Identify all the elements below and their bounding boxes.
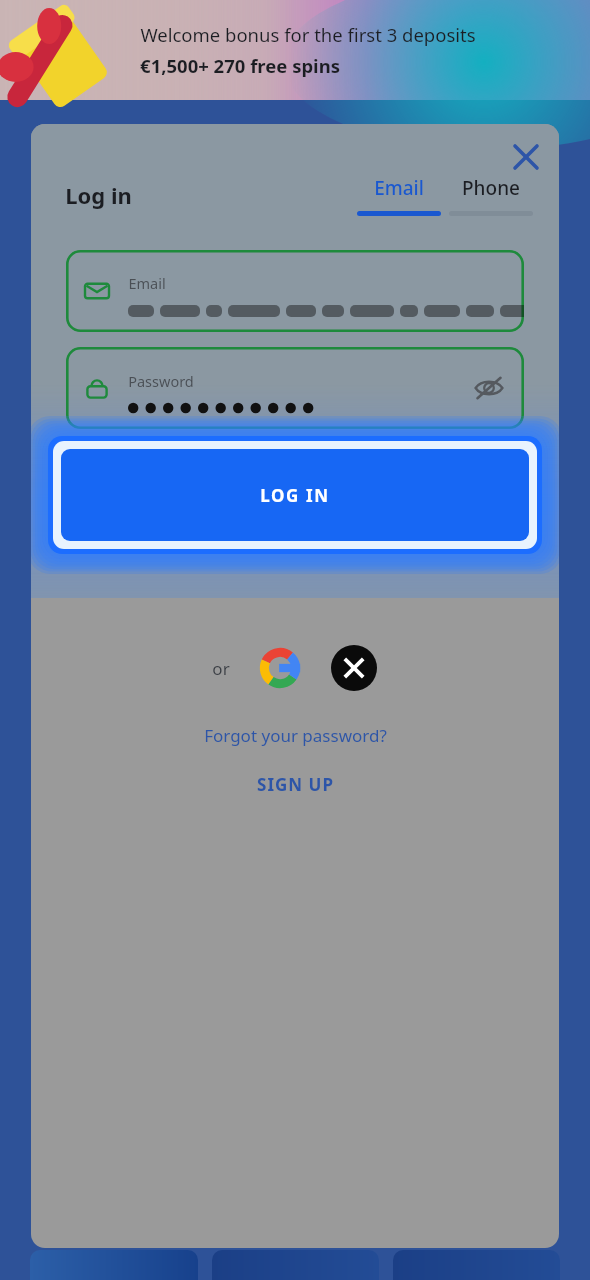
staticText: Welcome bonus for the first 3 deposits [140,22,476,47]
button[interactable]: Toggle password visibility [470,369,508,407]
staticText: or [212,657,230,680]
button[interactable]: Sign in with Google [256,644,304,692]
staticText: €1,500+ 270 free spins [140,53,340,78]
button[interactable]: Email [66,250,524,332]
button[interactable]: Forgot your password? [31,713,559,757]
staticText: Email [374,175,424,201]
button[interactable]: LOG IN [61,449,529,541]
staticText: Phone [462,175,520,201]
staticText: LOG IN [260,484,330,507]
staticText: Log in [65,180,132,210]
button[interactable]: SIGN UP [31,762,559,806]
button[interactable]: Phone [449,175,533,216]
staticText: Email [128,273,166,293]
staticText: Forgot your password? [204,724,387,747]
button[interactable]: Sign in with X [330,644,378,692]
button[interactable]: Close [500,131,552,183]
staticText: SIGN UP [257,773,334,796]
button[interactable]: Password [66,347,524,429]
button[interactable]: Email [357,175,441,216]
staticText: Password [128,371,194,391]
